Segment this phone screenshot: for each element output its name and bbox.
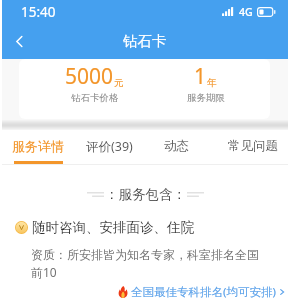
staticText: 常见问题 xyxy=(228,138,278,154)
staticText: 服务详情 xyxy=(12,138,64,154)
staticText: 15:40 xyxy=(21,3,56,21)
staticText: 随时咨询、安排面诊、住院 xyxy=(32,219,194,236)
staticText: 评价(39) xyxy=(86,138,133,155)
staticText: 全国最佳专科排名(均可安排) xyxy=(131,284,276,300)
button[interactable]: 常见问题 xyxy=(221,130,285,165)
button[interactable]: Back xyxy=(2,23,36,59)
staticText: 4G xyxy=(239,5,253,19)
staticText: 钻石卡价格 xyxy=(71,92,119,104)
staticText: 动态 xyxy=(164,138,189,154)
button[interactable]: 评价(39) xyxy=(77,130,141,165)
staticText: 钻石卡 xyxy=(123,32,167,50)
staticText: 资质：所安排皆为知名专家，科室排名全国前10 xyxy=(31,247,264,281)
staticText: ：服务包含： xyxy=(105,186,186,203)
button[interactable]: 全国最佳专科排名(均可安排) xyxy=(2,284,286,300)
staticText: 1 xyxy=(194,62,207,91)
button[interactable]: 动态 xyxy=(144,130,208,165)
button[interactable]: 服务详情 xyxy=(6,130,70,165)
staticText: 5000 xyxy=(65,62,114,91)
staticText: 元 xyxy=(114,77,124,89)
staticText: 年 xyxy=(207,77,217,89)
staticText: 服务期限 xyxy=(187,92,225,104)
